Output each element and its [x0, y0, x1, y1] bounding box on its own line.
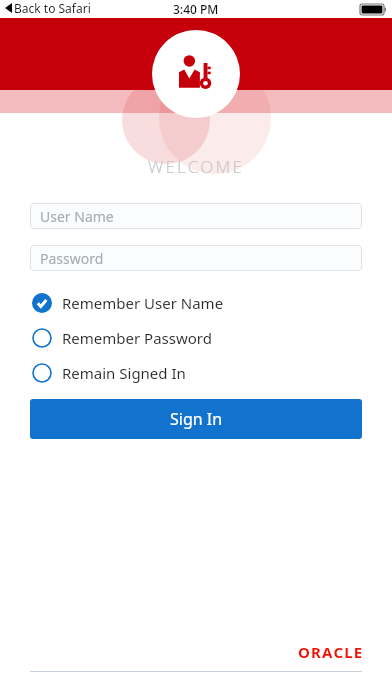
staticText: Remember User Name — [62, 293, 224, 313]
staticText: Back to Safari — [14, 0, 91, 16]
button[interactable]: Sign In — [30, 399, 362, 439]
button[interactable]: Remember Password — [0, 320, 392, 355]
staticText: Remember Password — [62, 328, 212, 348]
button[interactable]: Remember User Name — [0, 285, 392, 320]
button[interactable]: User Name — [30, 203, 362, 229]
staticText: User Name — [40, 207, 114, 226]
staticText: Password — [40, 249, 104, 268]
staticText: Sign In — [170, 408, 223, 430]
staticText: 3:40 PM — [173, 1, 219, 17]
staticText: Remain Signed In — [62, 363, 186, 383]
button[interactable]: Password — [30, 245, 362, 271]
staticText: ORACLE — [298, 642, 364, 662]
button[interactable]: Remain Signed In — [0, 355, 392, 390]
staticText: WELCOME — [0, 155, 392, 178]
